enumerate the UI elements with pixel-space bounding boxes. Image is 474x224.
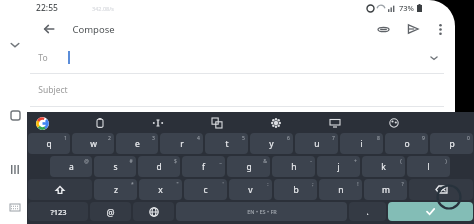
- button[interactable]: z: [94, 179, 137, 200]
- staticText: h: [291, 161, 297, 173]
- staticText: i: [360, 138, 363, 150]
- staticText: Compose email: [38, 117, 100, 129]
- button[interactable]: Google: [33, 114, 51, 132]
- staticText: y: [269, 138, 274, 150]
- button[interactable]: .: [349, 202, 386, 221]
- button[interactable]: j: [317, 156, 360, 177]
- staticText: ?123: [50, 207, 67, 217]
- button[interactable]: q: [28, 133, 70, 154]
- button[interactable]: r: [160, 133, 203, 154]
- staticText: g: [246, 161, 252, 173]
- staticText: To: [38, 52, 48, 64]
- button[interactable]: e: [116, 133, 158, 154]
- button[interactable]: Themes: [385, 114, 403, 132]
- button[interactable]: Attach: [372, 18, 394, 40]
- staticText: ': [222, 181, 224, 188]
- staticText: 1: [64, 135, 67, 142]
- staticText: &: [263, 158, 267, 165]
- staticText: .: [366, 206, 369, 217]
- button[interactable]: x: [139, 179, 182, 200]
- staticText: 73%: [399, 3, 414, 13]
- button[interactable]: Compose email: [30, 107, 474, 139]
- staticText: d: [156, 161, 162, 173]
- staticText: 5: [242, 135, 245, 142]
- staticText: f: [202, 161, 205, 173]
- button[interactable]: k: [362, 156, 405, 177]
- staticText: _: [219, 158, 222, 165]
- staticText: 22:55: [36, 2, 58, 14]
- button[interactable]: g: [227, 156, 270, 177]
- staticText: s: [113, 161, 118, 173]
- staticText: w: [90, 138, 97, 150]
- button[interactable]: Settings: [267, 114, 285, 132]
- button[interactable]: b: [274, 179, 317, 200]
- staticText: 0: [467, 135, 470, 142]
- button[interactable]: @: [90, 202, 131, 221]
- button[interactable]: c: [184, 179, 227, 200]
- button[interactable]: Subject: [30, 74, 474, 106]
- button[interactable]: ?123: [28, 202, 88, 221]
- button[interactable]: f: [182, 156, 225, 177]
- staticText: m: [382, 184, 390, 196]
- button[interactable]: Back: [38, 18, 60, 40]
- staticText: 4: [197, 135, 200, 142]
- button[interactable]: m: [364, 179, 407, 200]
- staticText: q: [46, 138, 52, 150]
- staticText: c: [203, 184, 208, 196]
- button[interactable]: Send: [402, 18, 424, 40]
- staticText: #: [129, 158, 133, 165]
- button[interactable]: To: [30, 42, 474, 73]
- staticText: n: [338, 184, 344, 196]
- button[interactable]: Recents: [4, 158, 26, 180]
- button[interactable]: Floating handle: [436, 184, 462, 210]
- button[interactable]: p: [430, 133, 473, 154]
- button[interactable]: i: [340, 133, 383, 154]
- button[interactable]: d: [138, 156, 180, 177]
- staticText: Compose: [72, 23, 115, 36]
- button[interactable]: More options: [430, 19, 450, 39]
- staticText: 3: [152, 135, 155, 142]
- staticText: j: [337, 161, 340, 173]
- staticText: 2: [108, 135, 111, 142]
- staticText: o: [404, 138, 410, 150]
- staticText: (: [400, 158, 402, 165]
- button[interactable]: Home: [4, 104, 26, 126]
- staticText: 9: [422, 135, 425, 142]
- button[interactable]: Backspace: [409, 179, 473, 200]
- staticText: +: [354, 158, 357, 165]
- staticText: z: [114, 184, 118, 196]
- button[interactable]: l: [407, 156, 450, 177]
- staticText: e: [135, 138, 140, 150]
- staticText: l: [427, 161, 430, 173]
- button[interactable]: a: [50, 156, 92, 177]
- staticText: v: [248, 184, 253, 196]
- button[interactable]: u: [295, 133, 338, 154]
- button[interactable]: o: [385, 133, 428, 154]
- staticText: 342.08/s: [92, 5, 114, 12]
- staticText: p: [449, 138, 455, 150]
- button[interactable]: s: [94, 156, 136, 177]
- button[interactable]: Language: [133, 202, 174, 221]
- button[interactable]: Clipboard: [91, 114, 109, 132]
- button[interactable]: One-handed: [326, 114, 344, 132]
- button[interactable]: w: [72, 133, 114, 154]
- button[interactable]: Translate: [208, 114, 226, 132]
- button[interactable]: h: [272, 156, 315, 177]
- button[interactable]: Collapse: [4, 34, 26, 56]
- button[interactable]: y: [250, 133, 293, 154]
- button[interactable]: Enter: [388, 202, 473, 221]
- button[interactable]: Space: [176, 202, 347, 221]
- button[interactable]: Expand recipients: [426, 50, 442, 66]
- staticText: ;: [312, 181, 314, 188]
- button[interactable]: v: [229, 179, 272, 200]
- button[interactable]: Shift: [28, 179, 92, 200]
- button[interactable]: Text editing: [149, 114, 167, 132]
- staticText: @: [106, 206, 115, 218]
- staticText: EN • ES • FR: [247, 208, 277, 215]
- button[interactable]: Keyboard: [4, 196, 26, 218]
- button[interactable]: n: [319, 179, 362, 200]
- staticText: $: [174, 158, 177, 165]
- button[interactable]: t: [205, 133, 248, 154]
- staticText: -: [310, 158, 312, 165]
- staticText: r: [180, 138, 184, 150]
